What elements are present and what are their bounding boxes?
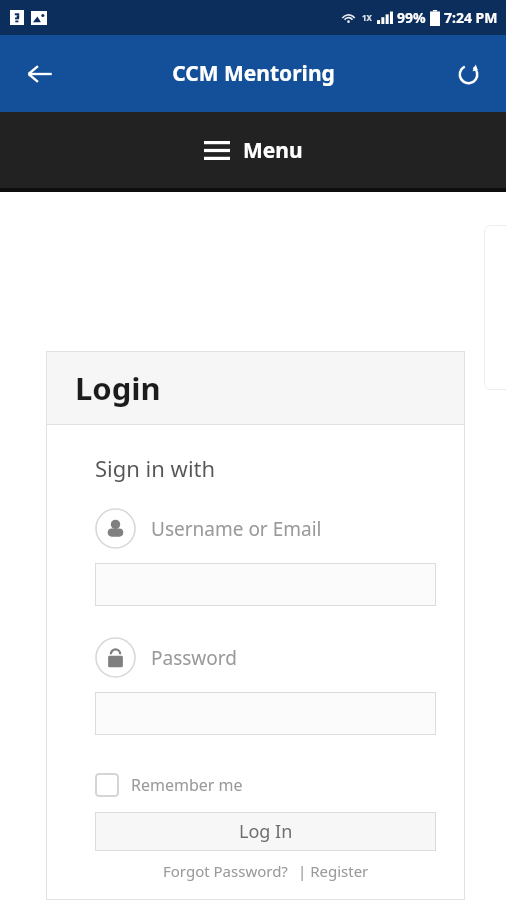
staticText: CCM Mentoring <box>172 59 335 88</box>
button[interactable]: Menu <box>0 112 506 188</box>
staticText: 99% <box>397 8 426 27</box>
button[interactable]: | Register <box>298 861 369 881</box>
button[interactable] <box>95 563 436 606</box>
staticText: 1X <box>362 12 372 23</box>
staticText: Remember me <box>131 774 243 796</box>
button[interactable]: Log In <box>95 812 436 851</box>
staticText: 7:24 PM <box>444 8 498 27</box>
button[interactable] <box>95 692 436 735</box>
button[interactable]: Refresh <box>442 48 494 100</box>
staticText: Log In <box>239 819 293 844</box>
button[interactable]: Remember me <box>95 773 243 797</box>
staticText: Password <box>151 645 237 671</box>
staticText: Username or Email <box>151 516 322 542</box>
staticText: Sign in with <box>95 453 216 483</box>
button[interactable]: Forgot Password? <box>163 861 288 881</box>
button[interactable]: Back <box>14 48 66 100</box>
staticText: Login <box>75 367 161 409</box>
staticText: Menu <box>243 136 303 165</box>
